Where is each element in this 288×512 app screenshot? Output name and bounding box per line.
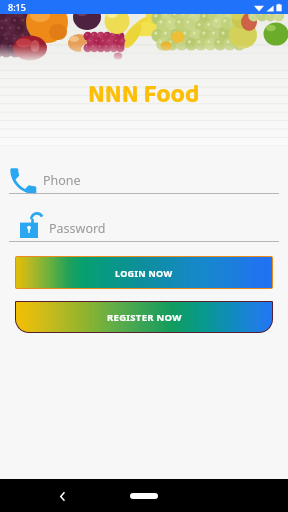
button[interactable]: Back xyxy=(50,484,74,508)
staticText: Phone xyxy=(43,172,81,189)
staticText: REGISTER NOW xyxy=(107,311,182,324)
staticText: 8:15 xyxy=(8,1,26,13)
staticText: LOGIN NOW xyxy=(115,267,173,279)
button[interactable]: LOGIN NOW xyxy=(16,257,272,288)
button[interactable]: Password xyxy=(9,215,279,242)
button[interactable]: Home xyxy=(124,487,164,505)
staticText: Password xyxy=(49,220,106,237)
button[interactable]: Phone xyxy=(9,167,279,194)
staticText: NNN Food xyxy=(88,75,200,115)
button[interactable]: REGISTER NOW xyxy=(16,302,272,332)
